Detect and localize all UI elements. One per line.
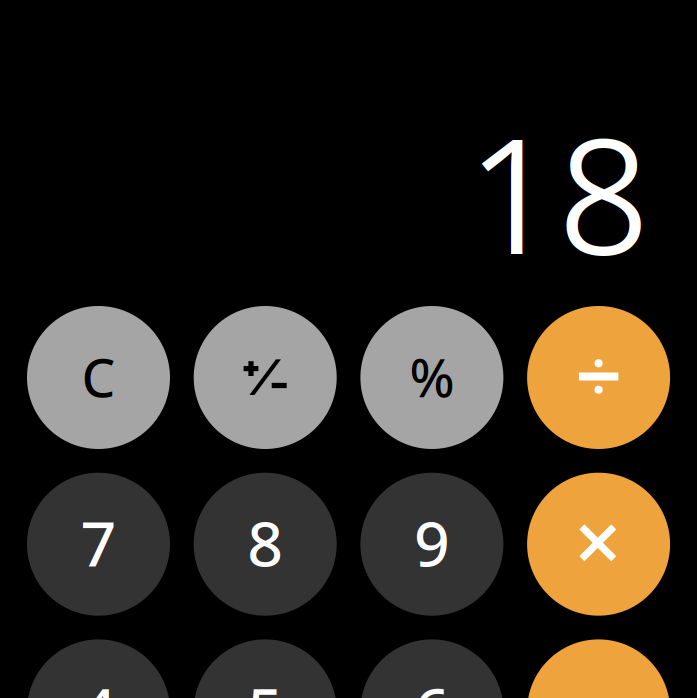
button[interactable]: Multiply bbox=[527, 473, 670, 616]
staticText: 8 bbox=[247, 499, 283, 585]
button[interactable]: Subtract bbox=[527, 639, 670, 698]
button[interactable]: 5 bbox=[194, 639, 337, 698]
button[interactable]: C bbox=[27, 306, 170, 449]
button[interactable]: Divide bbox=[527, 306, 670, 449]
staticText: 7 bbox=[80, 499, 116, 585]
button[interactable]: 4 bbox=[27, 639, 170, 698]
staticText: 9 bbox=[414, 499, 450, 585]
button[interactable]: 8 bbox=[194, 473, 337, 616]
staticText: 6 bbox=[414, 666, 450, 698]
button[interactable]: 7 bbox=[27, 473, 170, 616]
button[interactable]: % bbox=[360, 306, 503, 449]
staticText: 5 bbox=[247, 666, 283, 698]
staticText: C bbox=[81, 340, 115, 413]
staticText: 4 bbox=[80, 666, 116, 698]
staticText: 18 bbox=[467, 83, 649, 301]
button[interactable]: 9 bbox=[360, 473, 503, 616]
button[interactable]: Plus Minus bbox=[194, 306, 337, 449]
button[interactable]: 6 bbox=[360, 639, 503, 698]
staticText: % bbox=[409, 340, 454, 413]
